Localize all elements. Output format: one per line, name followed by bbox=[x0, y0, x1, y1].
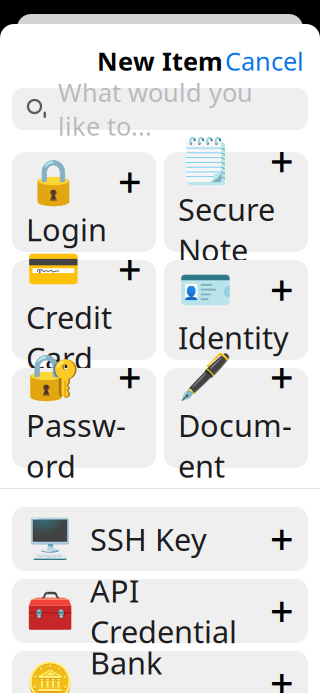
staticText: Login bbox=[26, 209, 107, 250]
staticText: SSH Key bbox=[90, 519, 207, 559]
staticText: + bbox=[118, 350, 142, 405]
staticText: 🔒 bbox=[26, 156, 81, 207]
button[interactable]: 🔐 bbox=[12, 368, 156, 468]
staticText: Password bbox=[26, 405, 126, 486]
button[interactable]: 🗒️ bbox=[164, 152, 308, 252]
staticText: + bbox=[270, 134, 294, 189]
staticText: 🖥️ bbox=[26, 517, 74, 561]
staticText: Identity bbox=[178, 317, 289, 358]
button[interactable]: 🪪 bbox=[164, 260, 308, 360]
staticText: 🪙 bbox=[26, 661, 74, 693]
staticText: + bbox=[270, 262, 294, 317]
staticText: + bbox=[118, 154, 142, 209]
button[interactable]: 🔒 bbox=[12, 152, 156, 252]
staticText: 🖋️ bbox=[178, 352, 233, 402]
button[interactable]: Cancel bbox=[217, 36, 312, 86]
staticText: New Item bbox=[97, 44, 223, 78]
button[interactable]: 🖥️ bbox=[12, 507, 308, 571]
staticText: Cancel bbox=[225, 44, 304, 78]
staticText: 💳 bbox=[26, 244, 81, 294]
staticText: + bbox=[270, 512, 294, 566]
staticText: 🗒️ bbox=[178, 136, 233, 186]
button[interactable]: 💳 bbox=[12, 260, 156, 360]
staticText: + bbox=[118, 242, 142, 297]
staticText: 🪪 bbox=[178, 264, 233, 315]
staticText: Bank Account bbox=[90, 642, 208, 693]
staticText: + bbox=[270, 350, 294, 405]
staticText: + bbox=[270, 656, 294, 693]
staticText: Credit Card bbox=[26, 297, 112, 378]
button[interactable]: 🖋️ bbox=[164, 368, 308, 468]
staticText: 🧰 bbox=[26, 589, 74, 633]
staticText: Secure Note bbox=[178, 189, 275, 270]
staticText: 🔐 bbox=[26, 352, 81, 402]
button[interactable]: 🧰 bbox=[12, 579, 308, 643]
button[interactable]: 🪙 bbox=[12, 651, 308, 693]
staticText: API Credential bbox=[90, 570, 237, 652]
staticText: What would you like to... bbox=[58, 75, 253, 143]
staticText: Document bbox=[178, 405, 292, 486]
staticText: + bbox=[270, 584, 294, 638]
button[interactable]: What would you like to... bbox=[12, 88, 308, 130]
